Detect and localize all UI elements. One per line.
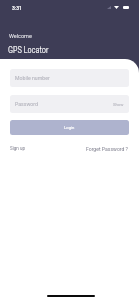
staticText: Sign up	[10, 146, 25, 151]
other: Wi-Fi	[114, 6, 119, 9]
staticText: Password	[15, 101, 38, 107]
staticText: 3:31	[12, 5, 22, 11]
staticText: GPS Locator	[8, 45, 49, 55]
button[interactable]: Mobile number	[10, 69, 129, 87]
button[interactable]: Forget Password ?	[86, 146, 129, 152]
button[interactable]: Login	[10, 120, 129, 135]
staticText: Forget Password ?	[86, 146, 129, 152]
button[interactable]: Password	[10, 95, 129, 113]
staticText: Login	[64, 125, 75, 130]
staticText: Show	[113, 102, 124, 107]
other: Cellular signal	[107, 6, 111, 9]
staticText: Welcome	[9, 33, 32, 39]
button[interactable]: Sign up	[10, 146, 25, 151]
other: Battery	[123, 6, 129, 9]
staticText: Mobile number	[15, 75, 50, 81]
